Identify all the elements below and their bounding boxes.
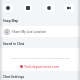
button[interactable]: Video call — [64, 4, 74, 12]
button[interactable]: Call — [44, 4, 54, 12]
button[interactable]: Chat — [23, 4, 33, 12]
staticText: Saved in Chat — [3, 42, 25, 46]
staticText: Photos and Videos you save in Chat will … — [7, 56, 73, 59]
staticText: Chat Settings — [3, 75, 24, 79]
button[interactable]: Share My Live Location — [0, 26, 80, 37]
staticText: Snap Map — [3, 19, 19, 23]
staticText: Techdepartment.com — [24, 64, 60, 69]
button[interactable]: Camera — [3, 4, 13, 12]
staticText: Share My Live Location — [12, 30, 47, 34]
